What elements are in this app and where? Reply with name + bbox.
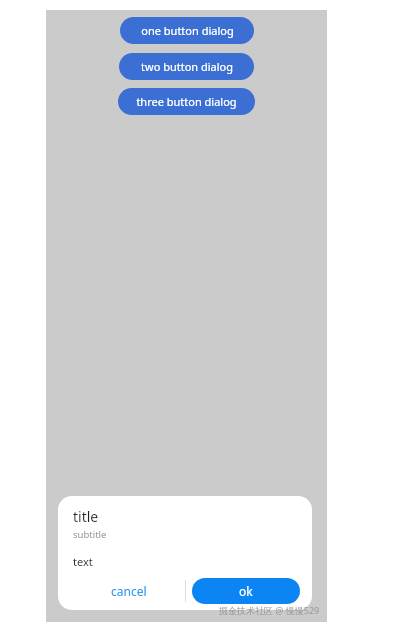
staticText: text [73, 554, 93, 569]
staticText: 掘金技术社区 @ 慢慢529 [219, 604, 320, 616]
staticText: title [73, 507, 99, 526]
staticText: three button dialog [136, 94, 237, 109]
staticText: cancel [111, 583, 147, 599]
button[interactable]: three button dialog [118, 88, 255, 115]
button[interactable]: ok [192, 578, 300, 604]
button[interactable]: two button dialog [119, 53, 254, 80]
staticText: one button dialog [141, 23, 234, 38]
button[interactable]: cancel [73, 578, 185, 604]
button[interactable]: one button dialog [120, 17, 254, 44]
staticText: ok [239, 583, 253, 599]
staticText: subtitle [73, 528, 107, 541]
staticText: two button dialog [141, 59, 233, 74]
